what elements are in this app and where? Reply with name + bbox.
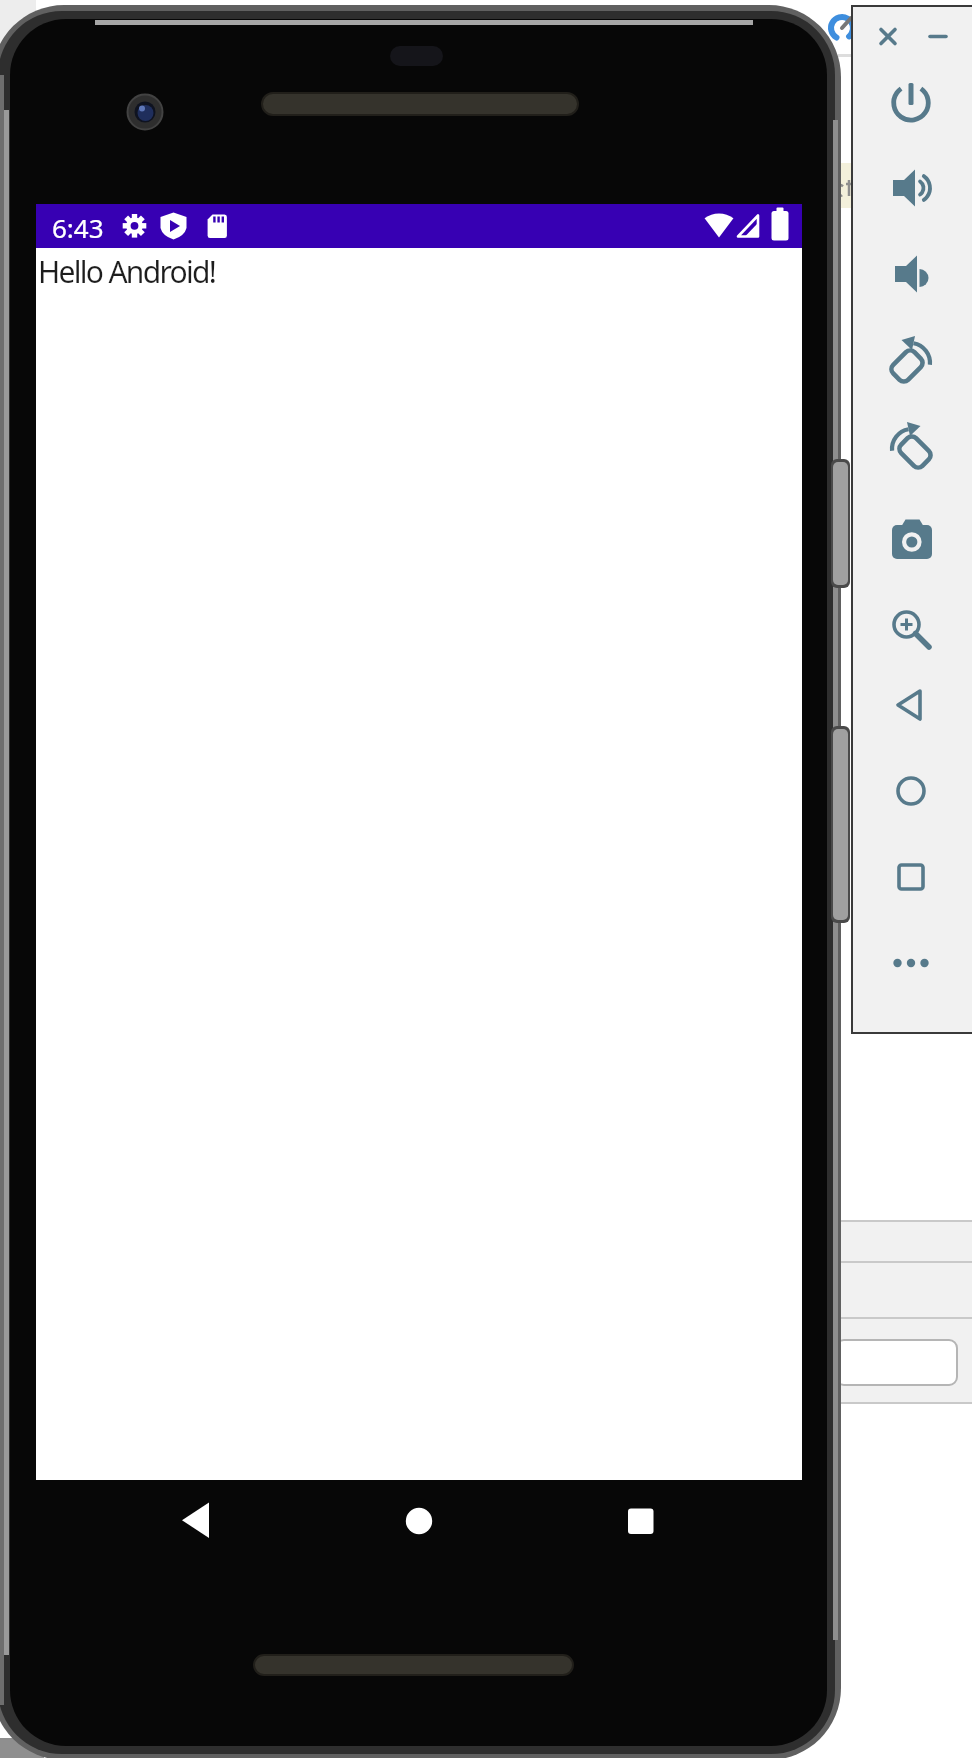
- button[interactable]: [887, 423, 935, 471]
- button[interactable]: [887, 853, 935, 901]
- button[interactable]: [887, 79, 935, 127]
- button[interactable]: [869, 22, 907, 52]
- button[interactable]: [172, 1496, 222, 1546]
- button[interactable]: [616, 1496, 666, 1546]
- button[interactable]: [887, 595, 935, 643]
- button[interactable]: [887, 509, 935, 557]
- button[interactable]: [887, 939, 935, 987]
- button[interactable]: [920, 22, 958, 52]
- button[interactable]: [887, 337, 935, 385]
- button[interactable]: [394, 1496, 444, 1546]
- button[interactable]: [887, 681, 935, 729]
- button[interactable]: [887, 767, 935, 815]
- staticText: 6:43: [52, 210, 104, 245]
- button[interactable]: [887, 251, 935, 299]
- staticText: Hello Android!: [38, 251, 216, 292]
- button[interactable]: [887, 165, 935, 213]
